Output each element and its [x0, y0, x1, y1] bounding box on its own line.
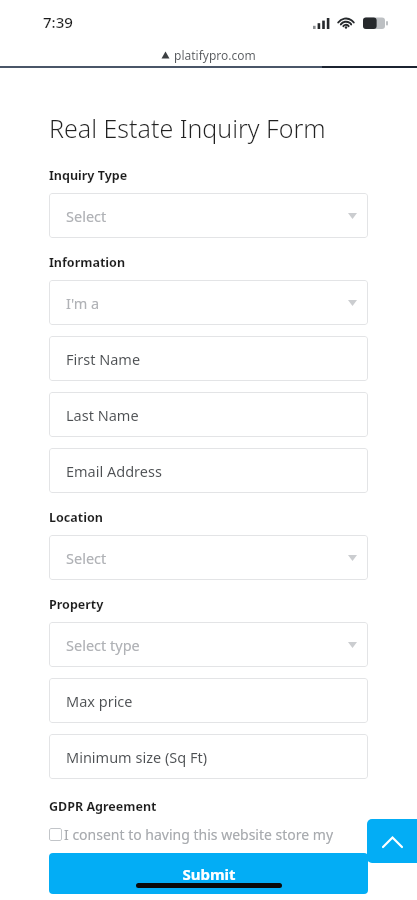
staticText: I'm a: [66, 293, 100, 313]
button[interactable]: I'm a: [49, 280, 368, 325]
staticText: Select: [66, 206, 107, 226]
staticText: Submit: [182, 864, 236, 884]
staticText: Property: [49, 596, 104, 613]
button[interactable]: Max price: [49, 678, 368, 723]
button[interactable]: Minimum size (Sq Ft): [49, 734, 368, 779]
staticText: Information: [49, 254, 126, 271]
staticText: Inquiry Type: [49, 167, 128, 184]
button[interactable]: I consent to having this website store m…: [49, 825, 372, 871]
staticText: Minimum size (Sq Ft): [66, 747, 207, 767]
staticText: Last Name: [66, 405, 139, 425]
staticText: GDPR Agreement: [49, 798, 157, 815]
staticText: I consent to having this website store m…: [64, 825, 372, 871]
button[interactable]: Select: [49, 193, 368, 238]
button[interactable]: Select: [49, 535, 368, 580]
button[interactable]: Submit: [49, 853, 368, 894]
button[interactable]: Select type: [49, 622, 368, 667]
staticText: platifypro.com: [174, 47, 256, 63]
button[interactable]: platifypro.com: [0, 44, 417, 66]
button[interactable]: First Name: [49, 336, 368, 381]
button[interactable]: Last Name: [49, 392, 368, 437]
staticText: Max price: [66, 691, 133, 711]
staticText: Real Estate Inquiry Form: [49, 111, 326, 145]
staticText: 7:39: [43, 12, 73, 32]
staticText: Select: [66, 548, 107, 568]
staticText: Email Address: [66, 461, 162, 481]
staticText: Select type: [66, 635, 140, 655]
button[interactable]: Email Address: [49, 448, 368, 493]
button[interactable]: Scroll to top: [367, 819, 417, 863]
staticText: First Name: [66, 349, 141, 369]
staticText: Location: [49, 509, 103, 526]
